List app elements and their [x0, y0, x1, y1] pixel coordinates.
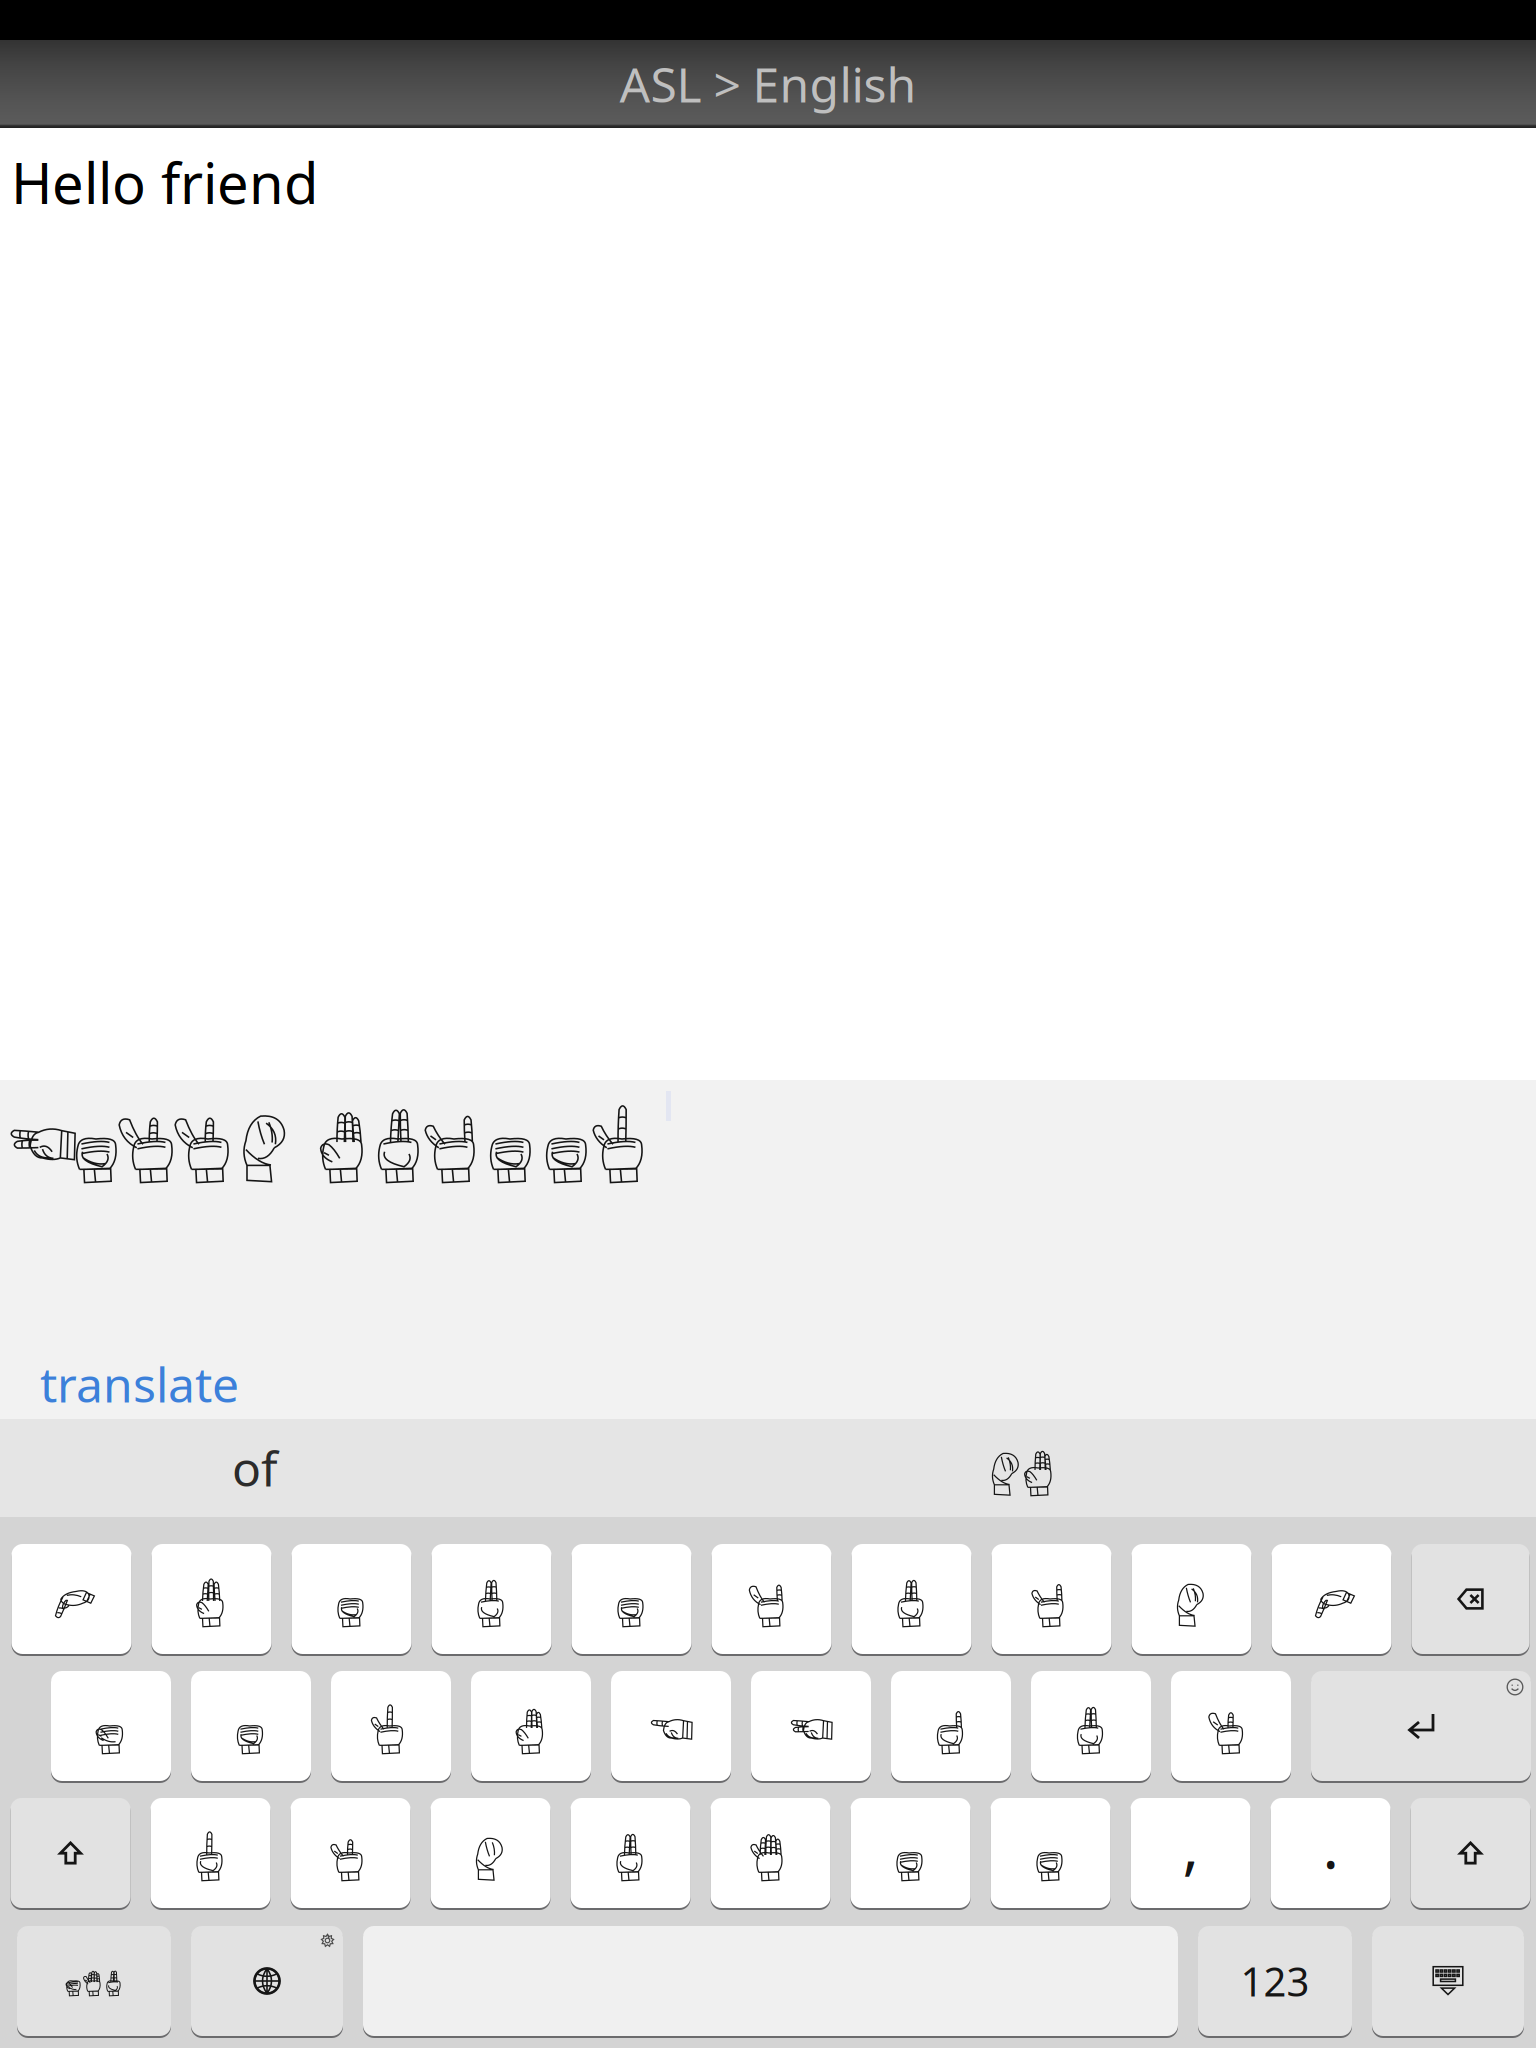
button[interactable]: Letter W: [151, 1544, 271, 1656]
button[interactable]: translate: [0, 1349, 1536, 1419]
button[interactable]: Letter J: [891, 1671, 1011, 1783]
button[interactable]: Letter Z: [150, 1798, 270, 1910]
button[interactable]: Numbers: [1198, 1926, 1352, 2038]
staticText: 123: [1240, 1954, 1309, 2007]
staticText: ASL > English: [619, 52, 916, 116]
button[interactable]: Shift: [10, 1798, 130, 1910]
button[interactable]: Dismiss keyboard: [1372, 1926, 1524, 2038]
button[interactable]: Period: [1270, 1798, 1390, 1910]
button[interactable]: Letter A: [51, 1671, 171, 1783]
button[interactable]: Letter L: [1171, 1671, 1291, 1783]
staticText: ,: [1182, 1804, 1198, 1886]
button[interactable]: Next keyboard: [191, 1926, 343, 2038]
button[interactable]: ASL letters: [17, 1926, 171, 2038]
button[interactable]: Space: [363, 1926, 1178, 2038]
button[interactable]: Letter M: [990, 1798, 1110, 1910]
button[interactable]: Letter K: [1031, 1671, 1151, 1783]
button[interactable]: Letter B: [710, 1798, 830, 1910]
button[interactable]: Letter Y: [711, 1544, 831, 1656]
button[interactable]: of fingerspelled: [510, 1419, 1536, 1517]
button[interactable]: Letter O: [1131, 1544, 1251, 1656]
button[interactable]: Letter I: [991, 1544, 1111, 1656]
staticText: Hello friend: [11, 145, 318, 219]
button[interactable]: Letter D: [331, 1671, 451, 1783]
button[interactable]: Letter H: [751, 1671, 871, 1783]
button[interactable]: Return: [1311, 1671, 1531, 1783]
button[interactable]: Letter C: [430, 1798, 550, 1910]
button[interactable]: Letter V: [570, 1798, 690, 1910]
button[interactable]: Letter Q: [11, 1544, 131, 1656]
button[interactable]: Shift: [1410, 1798, 1530, 1910]
button[interactable]: Letter E: [291, 1544, 411, 1656]
button[interactable]: Comma: [1130, 1798, 1250, 1910]
button[interactable]: Letter F: [471, 1671, 591, 1783]
staticText: of: [232, 1436, 278, 1500]
button[interactable]: of: [0, 1419, 510, 1517]
button[interactable]: Letter N: [850, 1798, 970, 1910]
button[interactable]: Letter X: [290, 1798, 410, 1910]
button[interactable]: Delete: [1411, 1544, 1529, 1656]
button[interactable]: Letter P: [1271, 1544, 1391, 1656]
button[interactable]: Letter R: [431, 1544, 551, 1656]
button[interactable]: Letter S: [191, 1671, 311, 1783]
button[interactable]: Letter U: [851, 1544, 971, 1656]
button[interactable]: Letter T: [571, 1544, 691, 1656]
staticText: .: [1322, 1804, 1338, 1886]
button[interactable]: Letter G: [611, 1671, 731, 1783]
staticText: translate: [40, 1352, 239, 1416]
